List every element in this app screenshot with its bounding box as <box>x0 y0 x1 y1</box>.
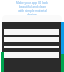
staticText: design <box>27 13 37 17</box>
staticText: beautiful and clean <box>19 5 46 9</box>
staticText: Make your app UI look <box>16 1 48 5</box>
staticText: with simple material <box>18 9 47 13</box>
